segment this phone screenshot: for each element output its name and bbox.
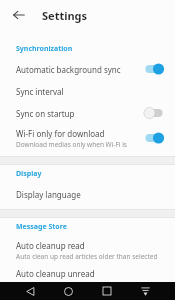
staticText: Download medias only when Wi-Fi is conne… — [16, 140, 137, 149]
button[interactable]: Auto cleanup read — [0, 236, 175, 264]
staticText: Auto clean up unread articles older than… — [16, 280, 165, 289]
staticText: Synchronization — [16, 44, 73, 54]
staticText: Auto clean up read articles older than s… — [16, 252, 165, 261]
staticText: Auto cleanup read — [16, 240, 85, 251]
staticText: Sync interval — [16, 86, 64, 97]
staticText: Display — [16, 169, 42, 179]
button[interactable]: Sync on startup — [0, 102, 175, 124]
button[interactable]: Sync interval — [0, 80, 175, 102]
staticText: Sync on startup — [16, 108, 75, 119]
staticText: Auto cleanup unread — [16, 268, 95, 279]
button[interactable]: Home — [60, 283, 76, 299]
button[interactable]: Wi-Fi only for download — [0, 124, 175, 152]
staticText: Wi-Fi only for download — [16, 128, 105, 139]
staticText: Settings — [42, 8, 88, 23]
button[interactable]: Automatic background sync — [0, 58, 175, 80]
button[interactable]: Recent apps — [99, 283, 115, 299]
button[interactable]: Display language — [0, 183, 175, 205]
staticText: Message Store — [16, 222, 67, 232]
staticText: Automatic background sync — [16, 64, 121, 75]
button[interactable]: Auto cleanup unread — [0, 264, 175, 292]
staticText: Display language — [16, 189, 81, 200]
button[interactable]: Back — [8, 4, 30, 26]
button[interactable]: Back — [22, 283, 38, 299]
button[interactable]: Hide — [137, 283, 153, 299]
